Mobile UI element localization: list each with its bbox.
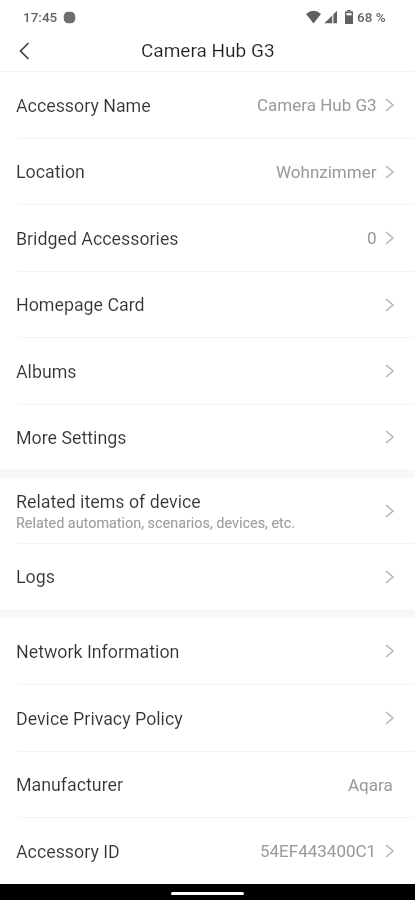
staticText: Network Information <box>16 641 180 662</box>
staticText: Manufacturer <box>16 774 124 795</box>
button[interactable]: Device Privacy Policy <box>0 685 415 751</box>
staticText: Related items of device <box>16 491 201 512</box>
staticText: Location <box>16 161 85 182</box>
staticText: More Settings <box>16 427 127 448</box>
staticText: Logs <box>16 566 55 587</box>
staticText: Accessory ID <box>16 841 120 862</box>
button[interactable]: Network Information <box>0 618 415 684</box>
button[interactable]: Back <box>0 32 48 69</box>
staticText: Related automation, scenarios, devices, … <box>16 515 296 532</box>
staticText: Wohnzimmer <box>276 162 377 182</box>
button[interactable]: Accessory Name <box>0 72 415 138</box>
button[interactable]: Manufacturer <box>0 752 415 817</box>
staticText: Homepage Card <box>16 294 145 315</box>
button[interactable]: Accessory ID <box>0 818 415 884</box>
button[interactable]: Location <box>0 139 415 204</box>
staticText: Aqara <box>348 775 393 795</box>
button[interactable]: Bridged Accessories <box>0 205 415 271</box>
button[interactable]: Related items of device <box>0 478 415 543</box>
button[interactable]: Albums <box>0 338 415 404</box>
staticText: 68 % <box>357 9 386 25</box>
staticText: Device Privacy Policy <box>16 708 183 729</box>
button[interactable]: Homepage Card <box>0 272 415 337</box>
staticText: Bridged Accessories <box>16 228 179 249</box>
staticText: Camera Hub G3 <box>141 39 275 61</box>
staticText: Accessory Name <box>16 95 151 116</box>
button[interactable]: Logs <box>0 544 415 609</box>
staticText: Camera Hub G3 <box>257 95 377 115</box>
staticText: 17:45 <box>23 9 58 25</box>
button[interactable]: More Settings <box>0 405 415 469</box>
staticText: Albums <box>16 361 77 382</box>
staticText: 0 <box>367 228 377 248</box>
staticText: 54EF443400C1 <box>260 841 377 861</box>
